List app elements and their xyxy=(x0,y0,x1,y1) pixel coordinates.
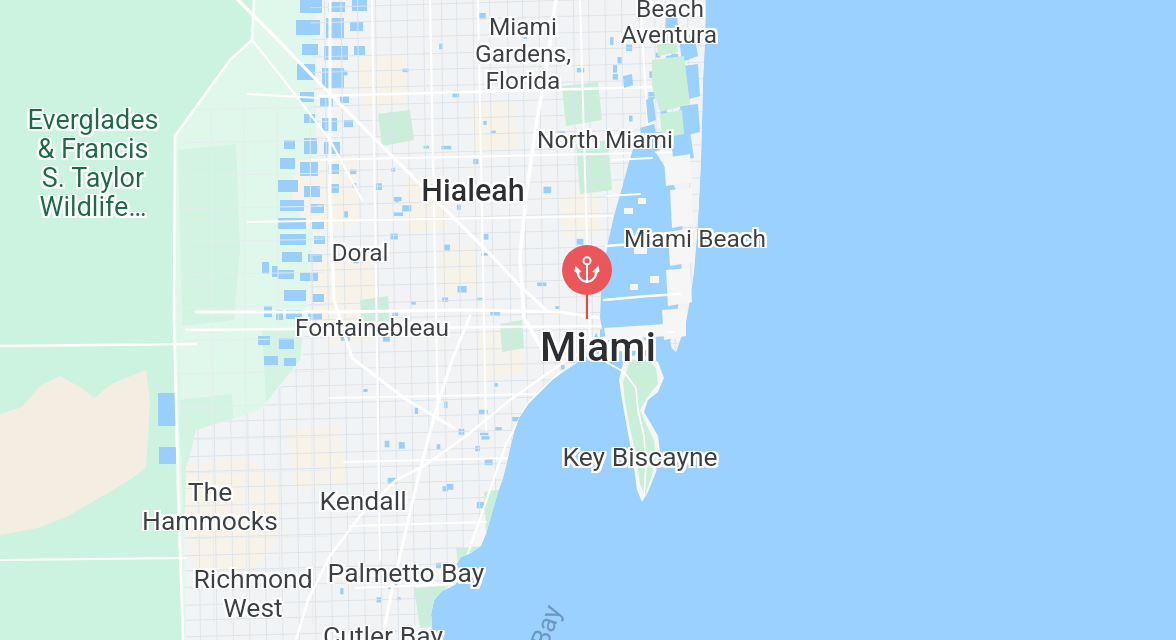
staticText: Miami Gardens, Florida xyxy=(265,14,785,97)
staticText: Miami Gardens, Florida xyxy=(263,10,783,93)
staticText: North Miami xyxy=(345,126,865,155)
staticText: Key Biscayne xyxy=(382,440,902,471)
staticText: Cutler Bay xyxy=(125,620,645,640)
staticText: Hialeah xyxy=(215,171,735,207)
staticText: Miami Beach xyxy=(437,222,957,251)
staticText: Miami Beach xyxy=(433,224,953,253)
staticText: Cutler Bay xyxy=(123,620,643,640)
staticText: Miami xyxy=(336,322,856,371)
staticText: Fontainebleau xyxy=(110,311,630,340)
staticText: Fontainebleau xyxy=(114,314,634,343)
staticText: The Hammocks xyxy=(0,477,468,537)
staticText: Hialeah xyxy=(213,171,733,207)
staticText: Fontainebleau xyxy=(114,311,634,340)
staticText: The Hammocks xyxy=(0,476,470,536)
staticText: Cutler Bay xyxy=(123,619,643,640)
staticText: Kendall xyxy=(105,487,625,518)
button[interactable]: Map of Miami xyxy=(0,0,1176,640)
staticText: Miami xyxy=(338,323,858,372)
staticText: North Miami xyxy=(347,125,867,154)
staticText: Miami xyxy=(338,322,858,371)
staticText: Cutler Bay xyxy=(125,619,645,640)
staticText: Miami Beach xyxy=(435,225,955,254)
staticText: Fontainebleau xyxy=(110,314,630,343)
staticText: Miami Gardens, Florida xyxy=(265,10,785,93)
staticText: Aventura xyxy=(407,20,927,49)
staticText: Key Biscayne xyxy=(382,443,902,474)
staticText: Doral xyxy=(102,236,622,265)
staticText: Miami xyxy=(340,323,860,372)
staticText: Hialeah xyxy=(211,171,731,207)
staticText: Hialeah xyxy=(213,173,733,209)
staticText: Miami Gardens, Florida xyxy=(261,12,781,95)
staticText: Kendall xyxy=(103,485,623,516)
staticText: Kendall xyxy=(101,484,621,515)
staticText: Aventura xyxy=(407,18,927,47)
staticText: Miami Beach xyxy=(433,222,953,251)
staticText: Kendall xyxy=(105,485,625,516)
staticText: Doral xyxy=(102,239,622,268)
staticText: Cutler Bay xyxy=(125,622,645,640)
staticText: Richmond West xyxy=(0,561,511,621)
staticText: Bay xyxy=(487,499,604,640)
staticText: Doral xyxy=(100,239,620,268)
staticText: Fontainebleau xyxy=(114,313,634,342)
staticText: Doral xyxy=(98,238,618,267)
staticText: Richmond West xyxy=(0,561,515,621)
staticText: Hialeah xyxy=(215,173,735,209)
staticText: The Hammocks xyxy=(0,476,472,536)
staticText: North Miami xyxy=(343,123,863,152)
staticText: Key Biscayne xyxy=(380,440,900,471)
staticText: Cutler Bay xyxy=(121,619,641,640)
staticText: Palmetto Bay xyxy=(146,559,666,590)
staticText: Palmetto Bay xyxy=(146,556,666,587)
staticText: Richmond West xyxy=(0,563,513,623)
staticText: Key Biscayne xyxy=(378,443,898,474)
staticText: Everglades & Francis S. Taylor Wildlife… xyxy=(0,104,351,223)
staticText: Everglades & Francis S. Taylor Wildlife… xyxy=(0,106,351,225)
staticText: Miami Beach xyxy=(435,224,955,253)
staticText: Key Biscayne xyxy=(382,441,902,472)
staticText: Beach xyxy=(410,0,930,21)
staticText: Miami Gardens, Florida xyxy=(261,14,781,97)
staticText: Doral xyxy=(98,236,618,265)
staticText: Richmond West xyxy=(0,563,511,623)
staticText: Beach xyxy=(412,0,932,24)
staticText: Everglades & Francis S. Taylor Wildlife… xyxy=(0,106,353,225)
staticText: Cutler Bay xyxy=(121,622,641,640)
staticText: Doral xyxy=(102,238,622,267)
staticText: The Hammocks xyxy=(0,476,468,536)
staticText: Hialeah xyxy=(215,175,735,211)
staticText: Beach xyxy=(410,0,930,24)
staticText: Miami xyxy=(340,322,860,371)
staticText: Kendall xyxy=(101,487,621,518)
staticText: Everglades & Francis S. Taylor Wildlife… xyxy=(0,103,355,222)
staticText: Palmetto Bay xyxy=(148,557,668,588)
staticText: Kendall xyxy=(103,484,623,515)
staticText: Miami Gardens, Florida xyxy=(263,14,783,97)
staticText: Aventura xyxy=(411,20,931,49)
staticText: The Hammocks xyxy=(0,474,470,534)
staticText: Cutler Bay xyxy=(121,620,641,640)
other: Harbour marker in Miami xyxy=(0,0,1176,640)
staticText: North Miami xyxy=(343,125,863,154)
staticText: Aventura xyxy=(411,21,931,50)
staticText: The Hammocks xyxy=(0,477,472,537)
staticText: The Hammocks xyxy=(0,474,468,534)
staticText: Palmetto Bay xyxy=(144,557,664,588)
staticText: Palmetto Bay xyxy=(148,556,668,587)
staticText: Doral xyxy=(100,236,620,265)
staticText: Cutler Bay xyxy=(123,622,643,640)
staticText: Key Biscayne xyxy=(378,441,898,472)
staticText: Kendall xyxy=(105,484,625,515)
staticText: Miami xyxy=(340,320,860,369)
staticText: Fontainebleau xyxy=(112,314,632,343)
staticText: North Miami xyxy=(343,126,863,155)
staticText: Key Biscayne xyxy=(378,440,898,471)
staticText: Hialeah xyxy=(211,173,731,209)
staticText: Miami Gardens, Florida xyxy=(265,12,785,95)
staticText: Palmetto Bay xyxy=(144,559,664,590)
staticText: Aventura xyxy=(411,18,931,47)
staticText: Key Biscayne xyxy=(380,443,900,474)
staticText: Beach xyxy=(408,0,928,23)
